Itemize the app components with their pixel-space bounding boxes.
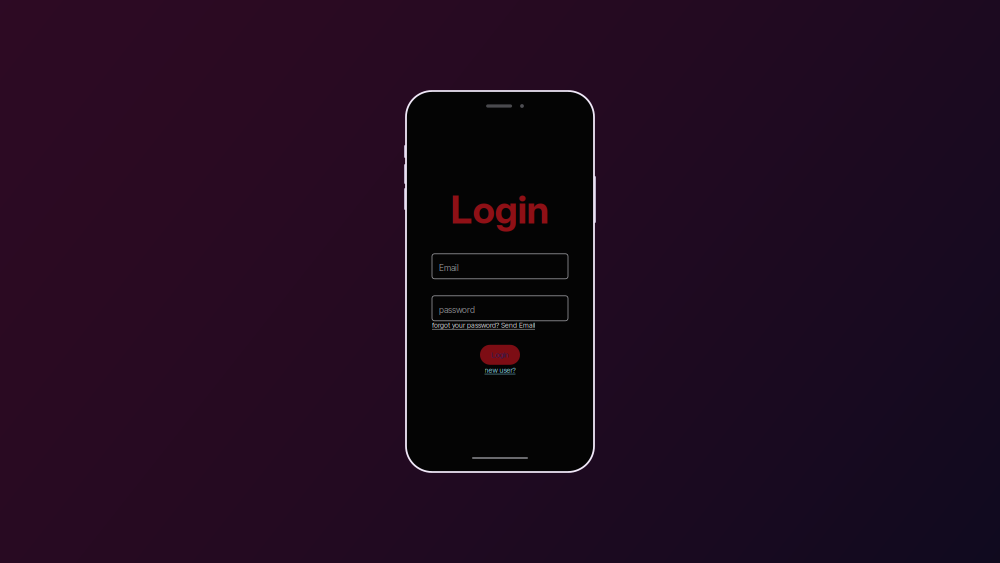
staticText: Login bbox=[450, 186, 549, 233]
button[interactable]: new user? bbox=[484, 366, 515, 374]
staticText: forgot your password? Send Email bbox=[432, 321, 535, 329]
staticText: new user? bbox=[484, 366, 515, 374]
button[interactable]: Login bbox=[480, 345, 520, 365]
staticText: Email bbox=[439, 262, 459, 273]
staticText: password bbox=[439, 304, 475, 315]
button[interactable]: forgot your password? Send Email bbox=[432, 321, 568, 330]
button[interactable]: password bbox=[432, 296, 568, 321]
button[interactable]: Email bbox=[432, 254, 568, 279]
staticText: Login bbox=[491, 350, 508, 359]
